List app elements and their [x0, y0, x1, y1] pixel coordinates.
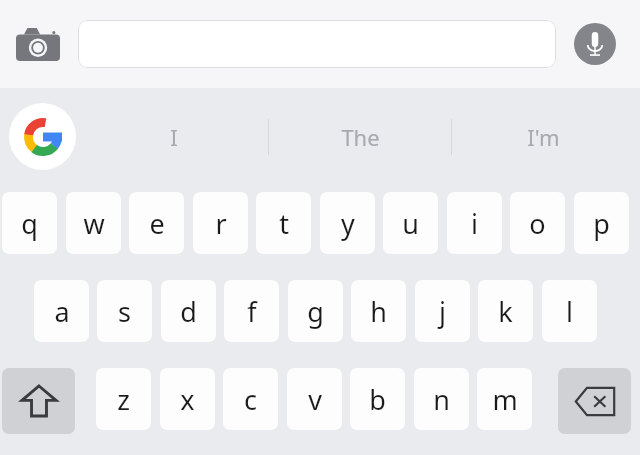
button[interactable]: q	[2, 192, 57, 254]
button[interactable]: b	[350, 368, 405, 430]
button[interactable]: Google	[9, 103, 76, 170]
staticText: c	[244, 381, 257, 418]
staticText: r	[215, 205, 227, 242]
staticText: f	[247, 293, 257, 330]
staticText: I'm	[527, 122, 560, 152]
button[interactable]: Voice search	[570, 19, 620, 69]
staticText: p	[593, 205, 610, 242]
button[interactable]: w	[66, 192, 121, 254]
staticText: h	[370, 293, 387, 330]
staticText: q	[21, 205, 38, 242]
staticText: n	[433, 381, 450, 418]
button[interactable]: t	[256, 192, 311, 254]
button[interactable]: n	[414, 368, 469, 430]
button[interactable]: g	[288, 280, 343, 342]
staticText: y	[341, 205, 355, 242]
staticText: I	[170, 122, 178, 152]
staticText: k	[498, 293, 513, 330]
button[interactable]: Backspace	[558, 368, 631, 434]
staticText: u	[402, 205, 419, 242]
button[interactable]: o	[510, 192, 565, 254]
button[interactable]: i	[447, 192, 502, 254]
staticText: w	[83, 205, 105, 242]
staticText: v	[308, 381, 322, 418]
staticText: e	[149, 205, 165, 242]
staticText: m	[492, 381, 518, 418]
staticText: z	[117, 381, 130, 418]
button[interactable]: c	[223, 368, 278, 430]
staticText: i	[471, 205, 478, 242]
button[interactable]: Camera search	[10, 20, 66, 68]
button[interactable]: r	[193, 192, 248, 254]
button[interactable]: e	[129, 192, 184, 254]
button[interactable]: m	[477, 368, 532, 430]
button[interactable]: s	[97, 280, 152, 342]
button[interactable]: z	[96, 368, 151, 430]
button[interactable]: y	[320, 192, 375, 254]
staticText: b	[369, 381, 386, 418]
staticText: l	[566, 293, 573, 330]
button[interactable]: u	[383, 192, 438, 254]
button[interactable]: p	[574, 192, 629, 254]
button[interactable]: k	[478, 280, 533, 342]
staticText: s	[118, 293, 131, 330]
staticText: d	[180, 293, 197, 330]
staticText: o	[529, 205, 546, 242]
button[interactable]: v	[287, 368, 342, 430]
staticText: x	[180, 381, 195, 418]
button[interactable]: The	[270, 88, 450, 186]
button[interactable]: h	[351, 280, 406, 342]
staticText: t	[279, 205, 289, 242]
button[interactable]: a	[34, 280, 89, 342]
button[interactable]: Search field	[78, 20, 556, 68]
button[interactable]: I	[84, 88, 264, 186]
staticText: g	[307, 293, 324, 330]
button[interactable]: f	[224, 280, 279, 342]
button[interactable]: d	[161, 280, 216, 342]
button[interactable]: l	[542, 280, 597, 342]
button[interactable]: j	[415, 280, 470, 342]
button[interactable]: x	[160, 368, 215, 430]
button[interactable]: Shift	[2, 368, 75, 434]
staticText: The	[341, 122, 380, 152]
staticText: j	[439, 293, 446, 330]
staticText: a	[54, 293, 70, 330]
button[interactable]: I'm	[453, 88, 633, 186]
